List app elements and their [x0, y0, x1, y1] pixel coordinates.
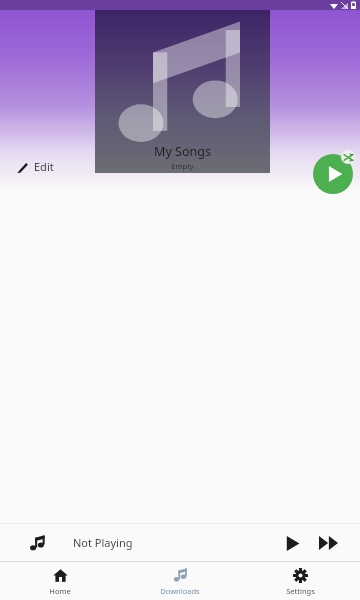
button[interactable]: Shuffle play: [311, 150, 355, 194]
button[interactable]: Downloads: [120, 562, 240, 600]
button[interactable]: My Songs: [95, 10, 270, 173]
button[interactable]: Settings: [240, 562, 360, 600]
staticText: Not Playing: [73, 535, 133, 550]
staticText: Settings: [286, 586, 315, 596]
button[interactable]: Now playing: [22, 528, 52, 558]
staticText: My Songs: [154, 143, 211, 160]
button[interactable]: Home: [0, 562, 120, 600]
staticText: Downloads: [160, 586, 200, 596]
button[interactable]: Next: [310, 525, 346, 561]
button[interactable]: Edit: [10, 155, 59, 178]
staticText: Home: [49, 586, 71, 596]
staticText: Edit: [34, 159, 54, 174]
button[interactable]: Play: [274, 525, 310, 561]
staticText: Empty: [171, 161, 194, 171]
